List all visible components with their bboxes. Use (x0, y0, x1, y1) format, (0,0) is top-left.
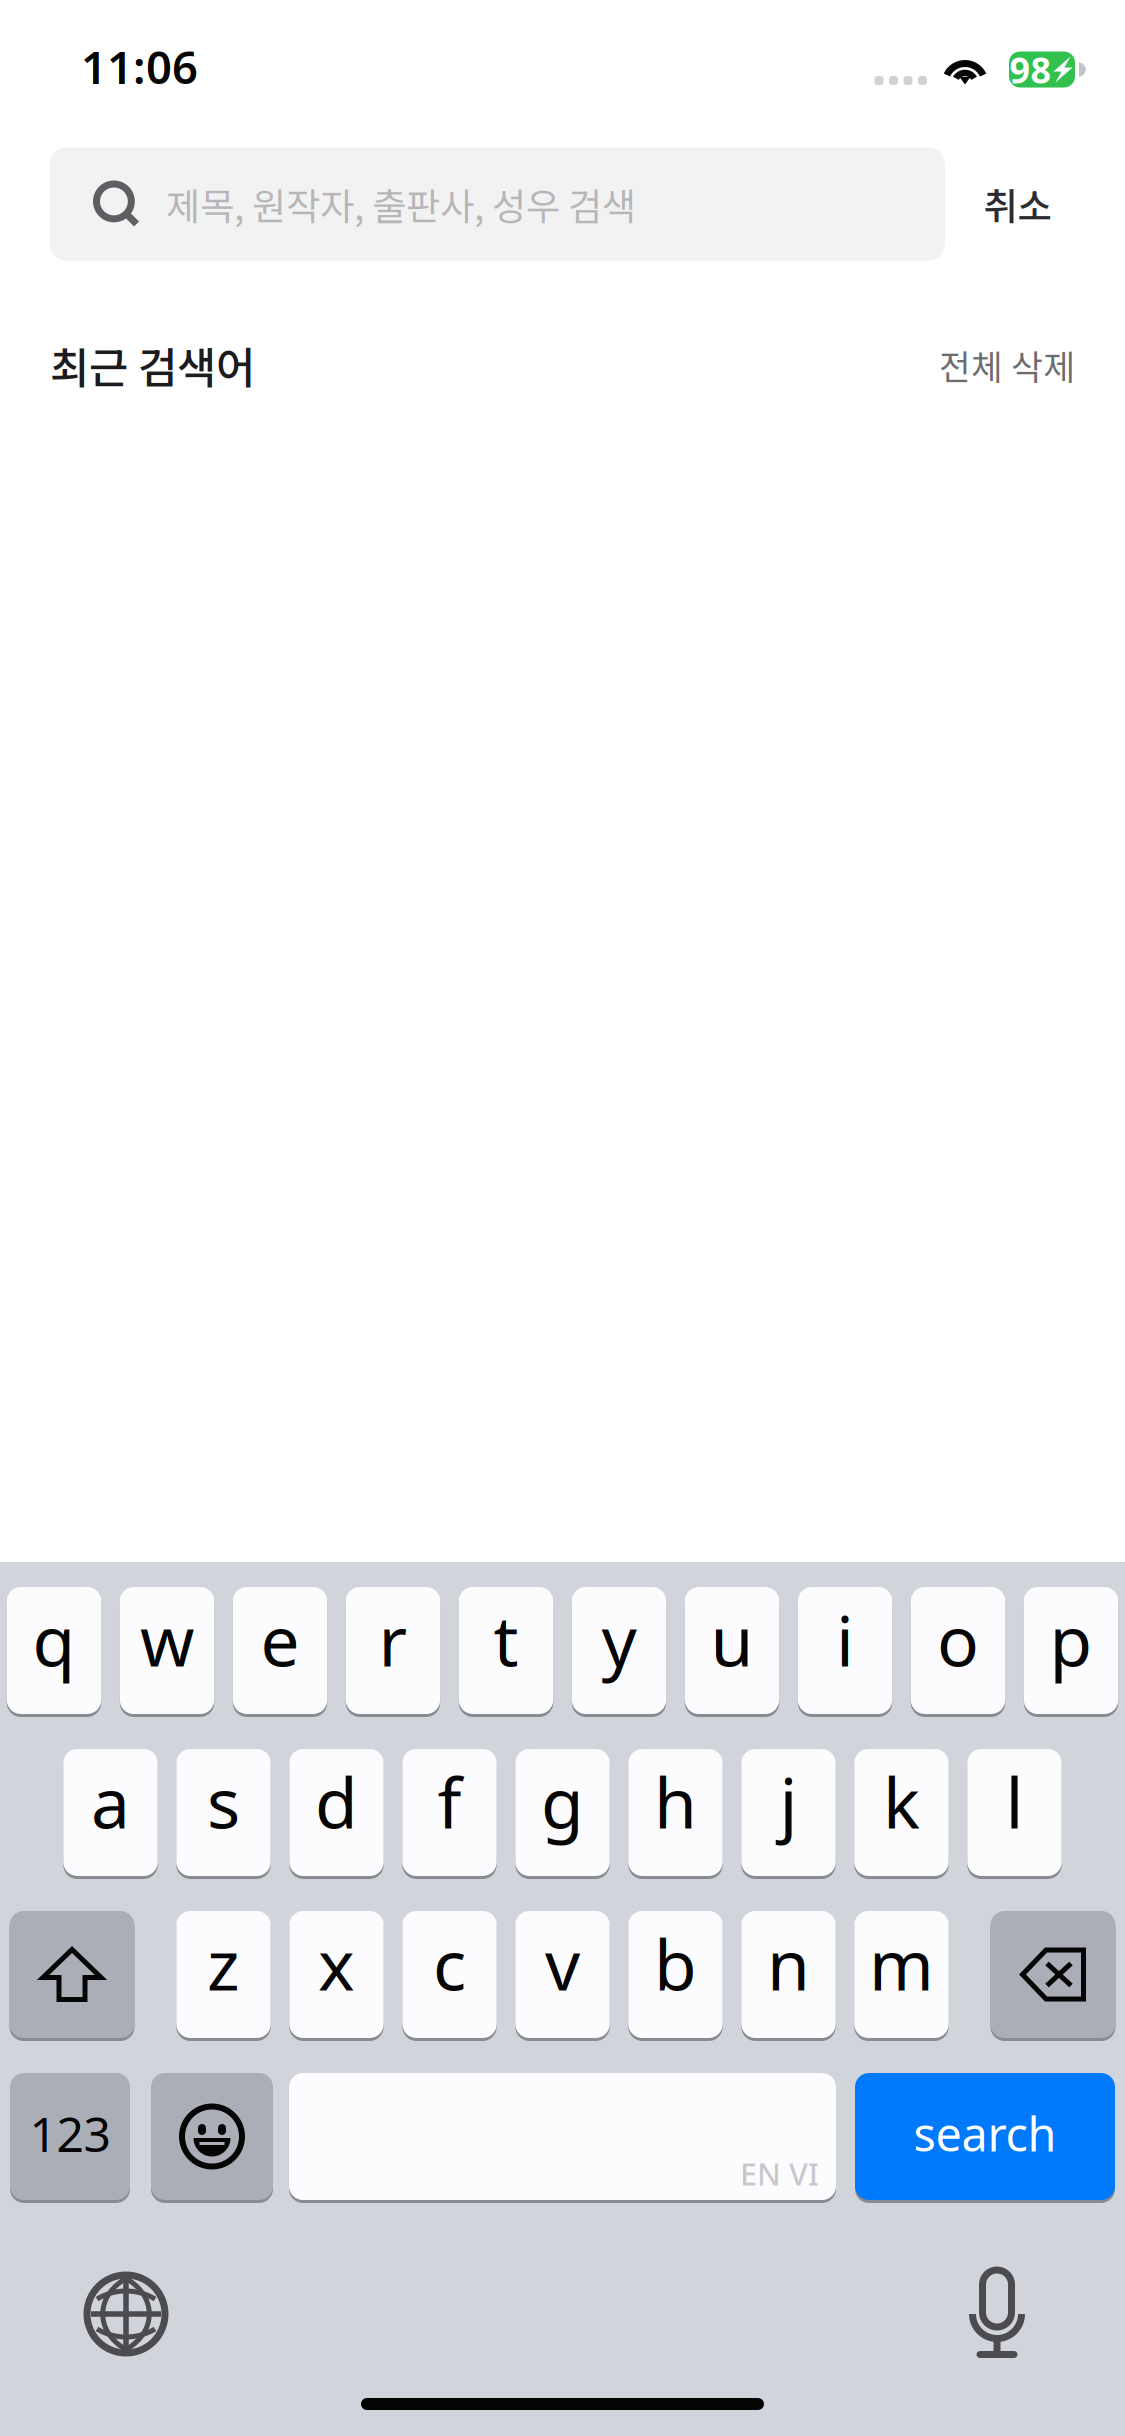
button[interactable]: n (741, 1911, 836, 2038)
button[interactable]: h (628, 1749, 723, 1876)
button[interactable]: k (854, 1749, 949, 1876)
button[interactable]: d (289, 1749, 384, 1876)
button[interactable]: c (402, 1911, 497, 2038)
staticText: f (437, 1755, 461, 1848)
button[interactable]: Emoji (151, 2073, 273, 2200)
button[interactable]: Space (289, 2073, 836, 2200)
button[interactable]: j (741, 1749, 836, 1876)
staticText: 제목, 원작자, 출판사, 성우 검색 (166, 177, 636, 231)
staticText: b (654, 1917, 697, 2010)
button[interactable]: 제목, 원작자, 출판사, 성우 검색 (50, 147, 945, 260)
staticText: 123 (29, 2102, 110, 2165)
button[interactable]: m (854, 1911, 949, 2038)
button[interactable]: b (628, 1911, 723, 2038)
button[interactable]: Switch keyboard (86, 2273, 166, 2355)
button[interactable]: i (798, 1587, 892, 1714)
button[interactable]: z (176, 1911, 271, 2038)
button[interactable]: y (572, 1587, 666, 1714)
staticText: a (91, 1755, 130, 1848)
staticText: w (140, 1593, 194, 1686)
staticText: d (315, 1755, 358, 1848)
staticText: EN VI (740, 2153, 819, 2194)
button[interactable]: w (120, 1587, 214, 1714)
button[interactable]: o (911, 1587, 1005, 1714)
button[interactable]: search (855, 2073, 1115, 2200)
staticText: r (378, 1593, 407, 1686)
button[interactable]: r (346, 1587, 440, 1714)
button[interactable]: f (402, 1749, 497, 1876)
staticText: t (493, 1593, 518, 1686)
staticText: j (779, 1755, 797, 1848)
staticText: h (654, 1755, 697, 1848)
button[interactable]: s (176, 1749, 271, 1876)
staticText: 11:06 (81, 36, 198, 97)
staticText: x (318, 1917, 355, 2010)
staticText: z (207, 1917, 240, 2010)
button[interactable]: 전체 삭제 (939, 340, 1075, 390)
button[interactable]: p (1024, 1587, 1118, 1714)
button[interactable]: a (63, 1749, 158, 1876)
staticText: c (433, 1917, 466, 2010)
staticText: v (545, 1917, 580, 2010)
button[interactable]: 취소 (960, 147, 1075, 260)
button[interactable]: Delete (990, 1911, 1115, 2038)
staticText: p (1049, 1593, 1092, 1686)
staticText: search (913, 2102, 1056, 2164)
staticText: 98 (1009, 46, 1051, 93)
staticText: u (710, 1593, 753, 1686)
button[interactable]: u (685, 1587, 779, 1714)
button[interactable]: x (289, 1911, 384, 2038)
staticText: 전체 삭제 (939, 340, 1075, 390)
staticText: g (541, 1755, 584, 1848)
button[interactable]: q (7, 1587, 101, 1714)
button[interactable]: v (515, 1911, 610, 2038)
staticText: 최근 검색어 (50, 334, 255, 396)
button[interactable]: 123 (10, 2073, 130, 2200)
staticText: i (836, 1593, 854, 1686)
staticText: e (260, 1593, 299, 1686)
staticText: o (937, 1593, 979, 1686)
button[interactable]: t (459, 1587, 553, 1714)
staticText: q (32, 1593, 75, 1686)
staticText: l (1005, 1755, 1023, 1848)
button[interactable]: g (515, 1749, 610, 1876)
staticText: 취소 (983, 177, 1051, 231)
staticText: s (207, 1755, 240, 1848)
button[interactable]: Shift (9, 1911, 134, 2038)
staticText: n (767, 1917, 810, 2010)
button[interactable]: l (967, 1749, 1062, 1876)
staticText: m (869, 1917, 934, 2010)
staticText: k (883, 1755, 920, 1848)
staticText: y (601, 1593, 636, 1686)
button[interactable]: Dictation (969, 2270, 1025, 2358)
button[interactable]: e (233, 1587, 327, 1714)
